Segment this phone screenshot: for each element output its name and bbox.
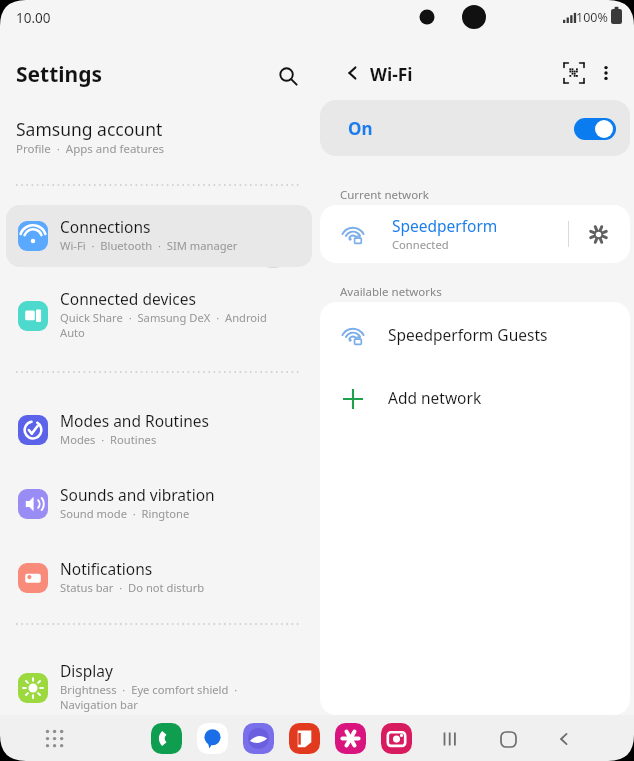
button[interactable]: Display — [6, 651, 312, 725]
button[interactable]: Back — [549, 724, 579, 754]
staticText: Display — [60, 660, 113, 681]
button[interactable]: Camera — [381, 723, 412, 754]
button[interactable]: Add network — [320, 366, 630, 430]
staticText: Current network — [340, 187, 430, 203]
staticText: Connected — [392, 237, 449, 252]
button[interactable]: Speedperform Guests — [320, 302, 630, 366]
button[interactable]: On — [320, 100, 630, 156]
button[interactable]: Notifications — [6, 547, 312, 609]
button[interactable]: Home — [493, 724, 523, 754]
staticText: Wi-Fi — [370, 62, 413, 86]
staticText: Speedperform — [392, 215, 498, 236]
staticText: Add network — [388, 387, 482, 408]
staticText: Notifications — [60, 558, 153, 579]
staticText: Connections — [60, 216, 151, 237]
button[interactable]: Phone — [151, 723, 182, 754]
button[interactable]: More options — [588, 55, 624, 91]
button[interactable]: Notes — [289, 723, 320, 754]
button[interactable]: Samsung account — [0, 105, 318, 167]
staticText: Wi-Fi · Bluetooth · SIM manager — [60, 238, 238, 253]
button[interactable]: Speedperform — [320, 205, 630, 263]
button[interactable]: Modes and Routines — [6, 399, 312, 461]
staticText: Modes · Routines — [60, 432, 157, 447]
staticText: Wallpaper and style — [60, 752, 204, 761]
staticText: Samsung account — [16, 117, 163, 141]
button[interactable]: Connected devices — [6, 279, 312, 353]
button[interactable]: Internet — [243, 723, 274, 754]
staticText: Available networks — [340, 284, 442, 300]
button[interactable]: Scan QR code — [556, 55, 592, 91]
staticText: Brightness · Eye comfort shield · Naviga… — [60, 682, 238, 712]
button[interactable]: Gallery — [335, 723, 366, 754]
staticText: Settings — [16, 60, 103, 89]
staticText: On — [348, 117, 373, 140]
staticText: Connected devices — [60, 288, 196, 309]
button[interactable]: Network settings — [582, 218, 614, 250]
button[interactable]: Recents — [436, 724, 466, 754]
staticText: Modes and Routines — [60, 410, 209, 431]
staticText: Speedperform Guests — [388, 324, 548, 345]
staticText: 100% — [576, 9, 608, 26]
button[interactable]: Search — [270, 58, 306, 94]
staticText: Profile · Apps and features — [16, 141, 165, 157]
staticText: 10.00 — [16, 9, 51, 27]
button[interactable]: Back — [336, 56, 370, 90]
button[interactable]: Sounds and vibration — [6, 473, 312, 535]
staticText: Sound mode · Ringtone — [60, 506, 190, 521]
button[interactable]: Connections — [6, 205, 312, 267]
button[interactable]: Apps — [40, 724, 68, 752]
staticText: Quick Share · Samsung DeX · Android Auto — [60, 310, 267, 340]
button[interactable]: Wallpaper and style — [6, 741, 312, 761]
staticText: Status bar · Do not disturb — [60, 580, 205, 595]
staticText: Sounds and vibration — [60, 484, 215, 505]
button[interactable]: Messages — [197, 723, 228, 754]
